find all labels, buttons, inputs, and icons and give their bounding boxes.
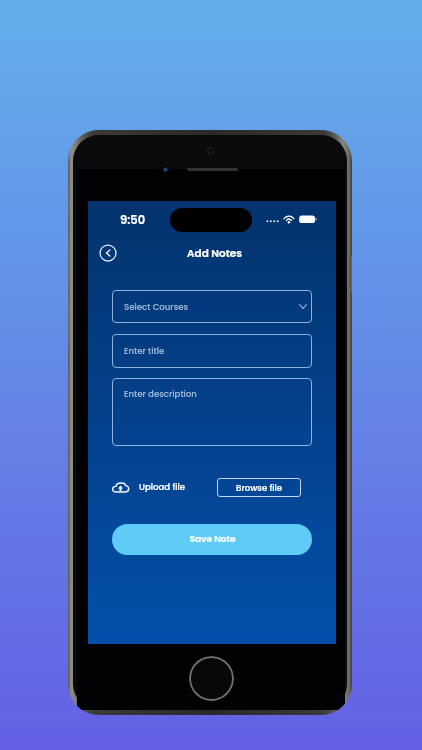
staticText: 9:50 bbox=[120, 212, 146, 228]
staticText: Select Courses bbox=[124, 301, 189, 313]
staticText: Enter description bbox=[124, 388, 197, 400]
button[interactable]: Select Courses bbox=[112, 290, 312, 323]
button[interactable]: Enter description bbox=[112, 378, 312, 446]
button[interactable]: Browse file bbox=[217, 478, 301, 497]
button[interactable]: Save Note bbox=[112, 524, 312, 555]
staticText: Add Notes bbox=[187, 246, 242, 261]
button[interactable]: Back bbox=[98, 243, 118, 263]
staticText: Upload file bbox=[139, 481, 186, 493]
button[interactable]: Enter title bbox=[112, 334, 312, 368]
button[interactable]: Upload file bbox=[111, 480, 186, 496]
staticText: Browse file bbox=[236, 482, 283, 494]
staticText: Save Note bbox=[189, 533, 236, 546]
button[interactable]: Home bbox=[189, 656, 234, 701]
staticText: Enter title bbox=[124, 345, 165, 357]
